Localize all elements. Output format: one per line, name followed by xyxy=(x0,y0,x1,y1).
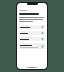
button[interactable]: Enabled xyxy=(19,43,45,49)
button[interactable]: Enabled xyxy=(41,45,44,48)
button[interactable]: Enabled xyxy=(19,37,45,41)
button[interactable]: Enabled xyxy=(19,31,45,35)
button[interactable]: Enabled xyxy=(19,25,45,29)
button[interactable]: Enabled xyxy=(41,26,44,28)
button[interactable]: Enabled xyxy=(41,32,44,34)
button[interactable]: Enabled xyxy=(41,38,44,40)
